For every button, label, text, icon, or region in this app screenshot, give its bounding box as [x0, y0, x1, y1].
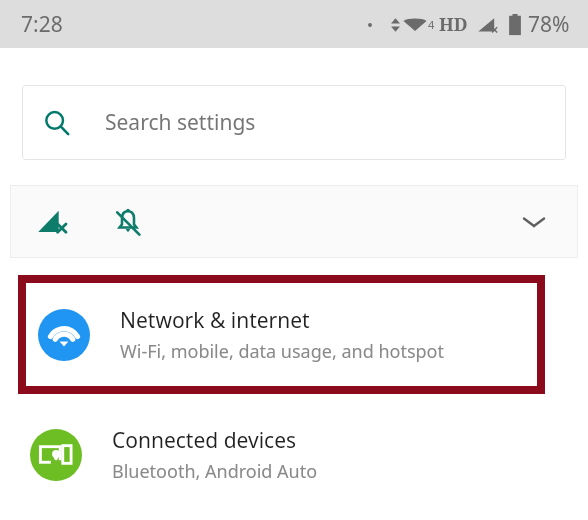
staticText: Connected devices: [112, 426, 297, 455]
button[interactable]: Search settings: [22, 85, 566, 160]
staticText: Bluetooth, Android Auto: [112, 459, 318, 484]
button[interactable]: Expand: [510, 198, 558, 246]
staticText: 7:28: [21, 10, 63, 39]
button[interactable]: Connected devices: [0, 410, 588, 500]
staticText: 78%: [528, 10, 570, 39]
button[interactable]: Network & internet: [26, 283, 537, 386]
button[interactable]: Mobile data off: [32, 202, 72, 242]
staticText: 4: [428, 17, 435, 32]
staticText: Search settings: [105, 108, 256, 137]
staticText: HD: [439, 12, 468, 37]
button[interactable]: Expand quick settings: [10, 185, 578, 258]
staticText: Wi-Fi, mobile, data usage, and hotspot: [120, 339, 444, 364]
button[interactable]: Notifications muted: [108, 202, 148, 242]
staticText: Network & internet: [120, 306, 310, 335]
